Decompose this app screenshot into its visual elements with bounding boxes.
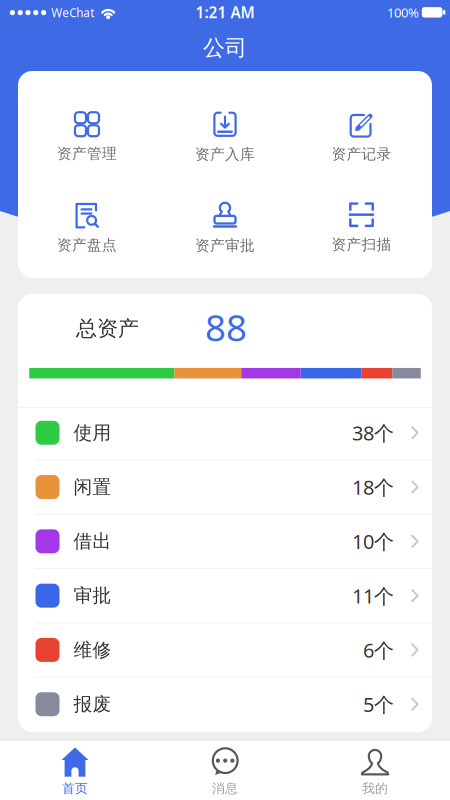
staticText: 资产入库	[195, 145, 255, 163]
staticText: 资产审批	[195, 236, 255, 255]
staticText: 报废	[73, 692, 111, 716]
staticText: 我的	[362, 780, 388, 796]
button[interactable]: 审批	[18, 569, 432, 622]
staticText: 1:21 AM	[195, 2, 254, 23]
button[interactable]: 资产扫描	[301, 195, 421, 261]
staticText: 6个	[363, 636, 394, 663]
staticText: 5个	[363, 691, 394, 718]
staticText: 资产记录	[331, 145, 391, 163]
button[interactable]: 报废	[18, 678, 432, 731]
staticText: 审批	[73, 584, 111, 607]
button[interactable]: 资产盘点	[27, 195, 147, 261]
staticText: 38个	[352, 419, 394, 446]
staticText: 借出	[73, 530, 111, 553]
staticText: 资产管理	[57, 144, 117, 163]
button[interactable]: 资产记录	[301, 104, 421, 170]
button[interactable]: 我的	[300, 742, 450, 800]
staticText: 消息	[212, 780, 238, 796]
staticText: 公司	[203, 34, 247, 62]
staticText: 使用	[73, 421, 111, 444]
staticText: 10个	[352, 528, 394, 555]
staticText: 100%	[387, 3, 419, 21]
staticText: 88	[205, 302, 247, 352]
button[interactable]: 资产管理	[27, 104, 147, 170]
staticText: 18个	[352, 473, 394, 501]
button[interactable]: 资产审批	[165, 195, 285, 261]
button[interactable]: 借出	[18, 515, 432, 568]
staticText: 总资产	[76, 315, 139, 342]
button[interactable]: 首页	[0, 742, 150, 800]
staticText: 维修	[73, 638, 111, 662]
staticText: 首页	[62, 780, 88, 796]
button[interactable]: 资产入库	[165, 104, 285, 170]
staticText: 11个	[352, 582, 394, 609]
button[interactable]: 消息	[150, 742, 300, 800]
button[interactable]: 闲置	[18, 460, 432, 514]
staticText: 闲置	[73, 475, 111, 499]
staticText: 资产扫描	[331, 235, 391, 254]
staticText: 资产盘点	[57, 236, 117, 254]
button[interactable]: 维修	[18, 623, 432, 677]
button[interactable]: 使用	[18, 406, 432, 459]
staticText: WeChat	[51, 5, 94, 21]
